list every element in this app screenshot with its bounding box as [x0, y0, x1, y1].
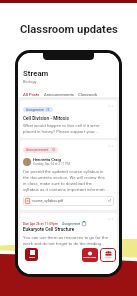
- staticText: Announcements: [44, 92, 74, 97]
- staticText: Menu: [29, 256, 35, 259]
- staticText: Biology: [23, 79, 37, 84]
- staticText: Classwork: [78, 92, 98, 97]
- staticText: What would happen to this cell if it wer…: [23, 123, 100, 134]
- button[interactable]: Menu: [25, 248, 38, 261]
- button[interactable]: Classwork: [76, 90, 100, 99]
- staticText: Announcement /3: [26, 148, 55, 152]
- staticText: I've posted the updated course syllabus …: [23, 169, 108, 192]
- button[interactable]: Announcement /3: [20, 140, 117, 210]
- staticText: Cell Division - Mitosis: [23, 116, 69, 122]
- staticText: Eukaryote Cell Structure: [23, 227, 75, 233]
- button[interactable]: course_syllabus.pdf: [23, 196, 114, 206]
- staticText: Stream: [23, 69, 49, 78]
- staticText: All Posts: [23, 92, 40, 97]
- button[interactable]: Due Apr 26 at 11:59pm: [20, 213, 117, 250]
- staticText: Assignment: [62, 222, 81, 226]
- staticText: Sunday, Apr 14 at 2:11 PM: [33, 162, 71, 166]
- button[interactable]: All Posts: [21, 90, 42, 99]
- button[interactable]: Assignment /5: [20, 100, 117, 138]
- staticText: School Feed: [83, 256, 97, 259]
- button[interactable]: School Feed: [82, 248, 98, 262]
- staticText: Due Apr 26 at 11:59pm: [23, 222, 58, 226]
- staticText: Assignment /5: [26, 108, 50, 112]
- staticText: Henrietta Craig: [33, 157, 61, 162]
- other: More options: [106, 216, 115, 222]
- button[interactable]: Roster: [100, 248, 116, 262]
- other: More options: [106, 103, 115, 109]
- staticText: Roster: [105, 256, 112, 259]
- staticText: ×1: [108, 199, 112, 203]
- other: More options: [106, 143, 115, 149]
- staticText: Classroom updates: [20, 23, 118, 36]
- button[interactable]: Announcements: [42, 90, 76, 99]
- staticText: You can use them as resources to go for …: [23, 235, 108, 246]
- staticText: course_syllabus.pdf: [32, 199, 64, 203]
